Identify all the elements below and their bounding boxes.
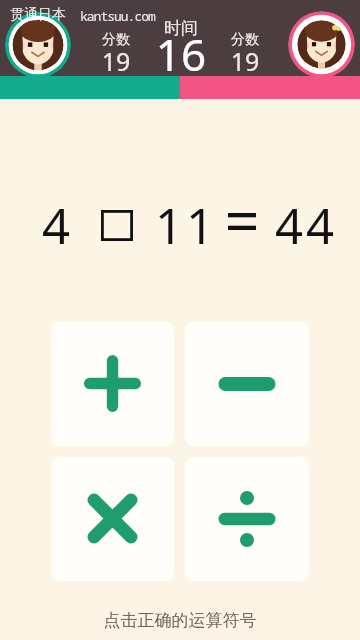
staticText: 贯通日本 — [10, 6, 66, 24]
staticText: 19 — [215, 44, 275, 78]
button[interactable]: Player two avatar — [288, 11, 355, 78]
staticText: 4 — [31, 192, 84, 259]
staticText: 点击正确的运算符号 — [0, 610, 360, 631]
button[interactable]: Multiply — [51, 457, 174, 581]
staticText: kantsuu.com — [80, 7, 155, 25]
button[interactable]: Plus — [51, 322, 174, 446]
button[interactable]: Player one avatar — [5, 12, 71, 78]
staticText: 分数 — [86, 31, 146, 49]
staticText: 44 — [256, 192, 356, 259]
staticText: 时间 — [151, 18, 211, 39]
button[interactable]: Divide — [185, 457, 309, 581]
staticText: 16 — [151, 24, 211, 84]
staticText: 11 — [136, 192, 236, 259]
staticText: 19 — [86, 44, 146, 78]
button[interactable]: Minus — [185, 322, 309, 446]
staticText: 分数 — [215, 31, 275, 49]
